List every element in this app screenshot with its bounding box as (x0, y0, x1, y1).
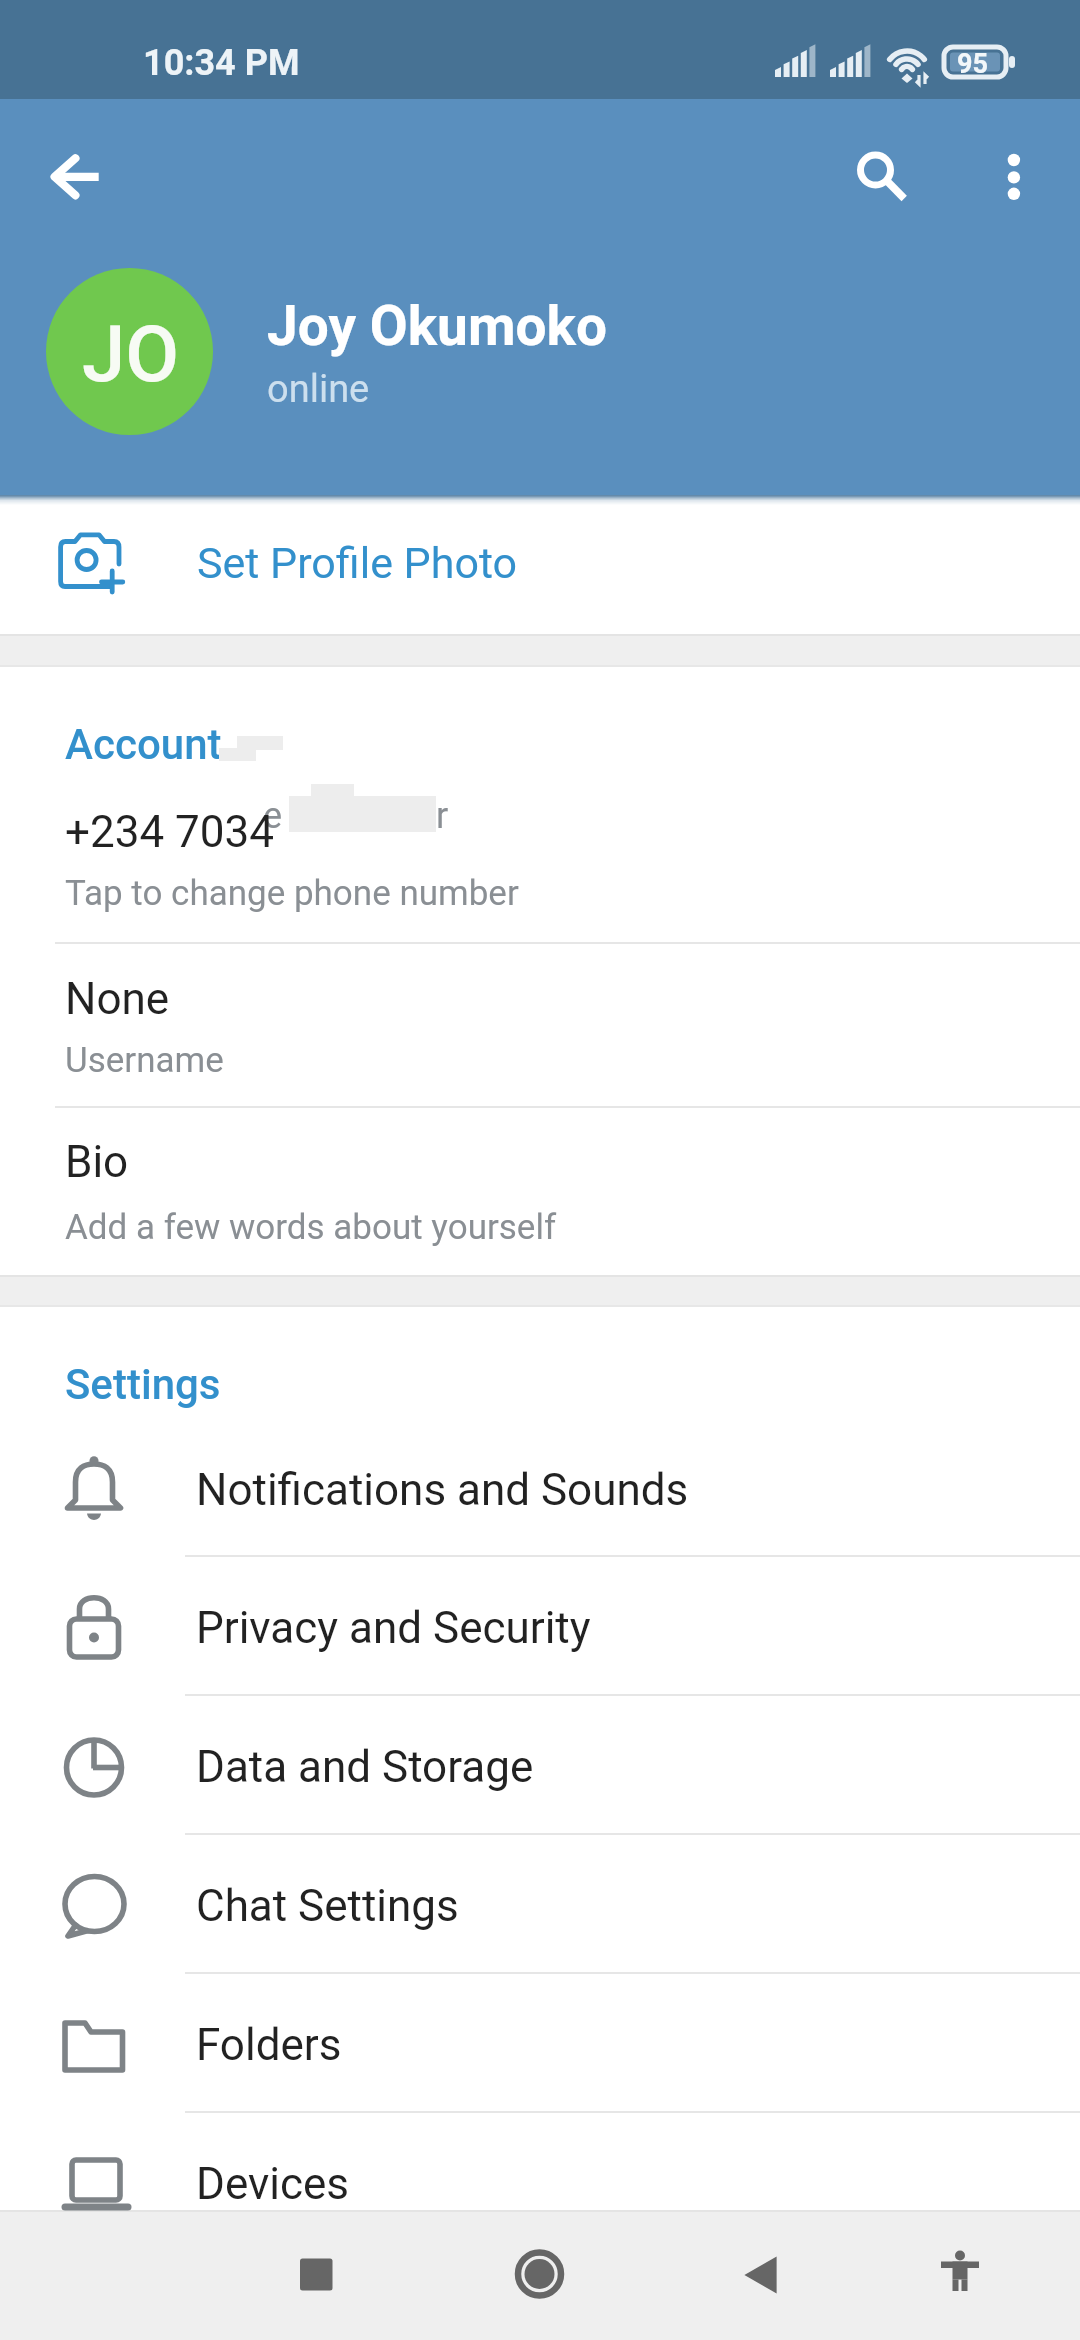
staticText: Joy Okumoko (267, 294, 608, 358)
staticText: None (65, 973, 170, 1025)
staticText: Devices (196, 2158, 350, 2210)
staticText: r (436, 795, 449, 837)
button[interactable]: Chat Settings (0, 1833, 1080, 1972)
button[interactable]: Privacy and Security (0, 1555, 1080, 1694)
staticText: online (267, 367, 370, 412)
staticText: Account (65, 720, 222, 769)
staticText: 95 (957, 48, 988, 80)
button[interactable]: None (0, 942, 1080, 1106)
button[interactable]: Devices (0, 2111, 1080, 2250)
staticText: +234 7034 (65, 806, 274, 858)
button[interactable]: Data and Storage (0, 1694, 1080, 1833)
button[interactable]: Search (822, 123, 930, 231)
staticText: Settings (65, 1360, 221, 1409)
staticText: Set Profile Photo (197, 538, 518, 588)
button[interactable]: Back (20, 123, 128, 231)
staticText: Privacy and Security (196, 1602, 591, 1654)
staticText: JO (82, 309, 180, 400)
staticText: Tap to change phone number (65, 873, 519, 914)
button[interactable]: More options (960, 123, 1068, 231)
staticText: Folders (196, 2019, 342, 2071)
staticText: Add a few words about yourself (65, 1207, 557, 1248)
staticText: e (263, 795, 283, 837)
staticText: Notifications and Sounds (196, 1464, 689, 1516)
button[interactable]: Back (700, 2210, 820, 2340)
staticText: 10:34 PM (143, 42, 300, 84)
staticText: Bio (65, 1136, 129, 1188)
button[interactable]: Folders (0, 1972, 1080, 2111)
button[interactable]: Set Profile Photo (0, 495, 1080, 634)
button[interactable]: Notifications and Sounds (0, 1417, 1080, 1555)
staticText: Username (65, 1040, 224, 1081)
staticText: Data and Storage (196, 1741, 534, 1793)
button[interactable]: Bio (0, 1106, 1080, 1275)
button[interactable]: Recent apps (255, 2210, 375, 2340)
button[interactable]: Accessibility (900, 2210, 1020, 2340)
button[interactable]: +234 7034 (0, 775, 1080, 942)
staticText: Chat Settings (196, 1880, 459, 1932)
button[interactable]: Home (480, 2210, 600, 2340)
button[interactable]: JO (46, 268, 213, 435)
